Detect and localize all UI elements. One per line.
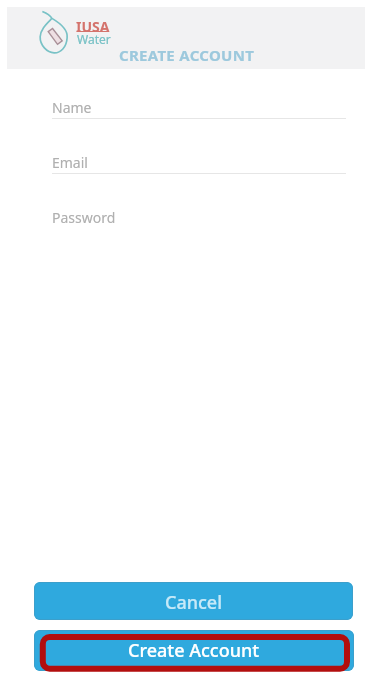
button[interactable]: Name [44, 91, 346, 121]
staticText: Password [52, 208, 116, 227]
staticText: Name [52, 98, 92, 117]
other: IUSA Water logo [38, 10, 69, 54]
button[interactable]: Password [44, 201, 346, 231]
button[interactable]: Cancel [34, 582, 353, 620]
button[interactable]: Create Account [34, 630, 354, 671]
button[interactable]: Email [44, 146, 346, 176]
staticText: CREATE ACCOUNT [119, 45, 255, 65]
staticText: IUSA [76, 17, 110, 36]
staticText: Create Account [128, 638, 260, 663]
staticText: Water [77, 31, 111, 47]
staticText: Email [52, 153, 88, 172]
staticText: Cancel [165, 590, 223, 615]
